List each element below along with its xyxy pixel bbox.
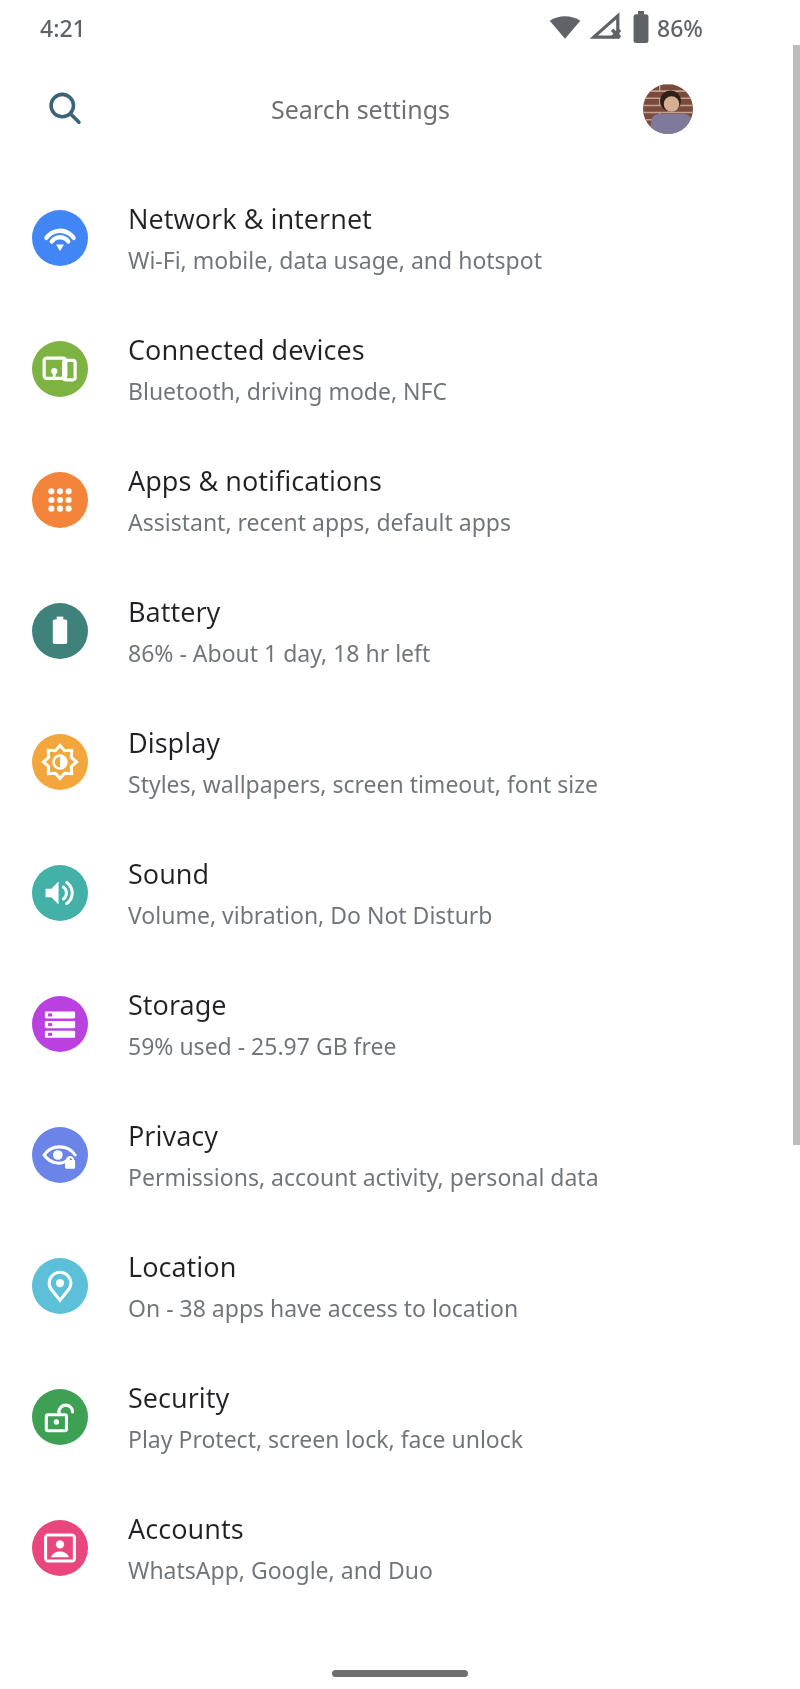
staticText: 59% used - 25.97 GB free bbox=[128, 1030, 397, 1061]
staticText: Privacy bbox=[128, 1117, 219, 1154]
other: Search bbox=[48, 92, 82, 126]
button[interactable]: Network & internet bbox=[0, 172, 800, 303]
staticText: Network & internet bbox=[128, 200, 372, 237]
button[interactable]: Display bbox=[0, 696, 800, 827]
button[interactable]: Battery bbox=[0, 565, 800, 696]
button[interactable]: Security bbox=[0, 1351, 800, 1482]
staticText: Location bbox=[128, 1248, 237, 1285]
button[interactable]: Accounts bbox=[0, 1482, 800, 1613]
staticText: 86% - About 1 day, 18 hr left bbox=[128, 637, 431, 668]
staticText: Storage bbox=[128, 986, 227, 1023]
staticText: Bluetooth, driving mode, NFC bbox=[128, 375, 448, 406]
staticText: Permissions, account activity, personal … bbox=[128, 1161, 599, 1192]
staticText: Connected devices bbox=[128, 331, 365, 368]
staticText: 4:21 bbox=[40, 12, 86, 43]
staticText: Accounts bbox=[128, 1510, 244, 1547]
staticText: Display bbox=[128, 724, 221, 761]
staticText: Battery bbox=[128, 593, 221, 630]
staticText: Assistant, recent apps, default apps bbox=[128, 506, 511, 537]
staticText: 86% bbox=[657, 12, 703, 43]
button[interactable]: Apps & notifications bbox=[0, 434, 800, 565]
staticText: Search settings bbox=[271, 92, 451, 126]
staticText: Security bbox=[128, 1379, 230, 1416]
button[interactable]: Sound bbox=[0, 827, 800, 958]
staticText: On - 38 apps have access to location bbox=[128, 1292, 519, 1323]
button[interactable]: Search bbox=[14, 68, 736, 150]
button[interactable]: Connected devices bbox=[0, 303, 800, 434]
staticText: Play Protect, screen lock, face unlock bbox=[128, 1423, 524, 1454]
staticText: Wi-Fi, mobile, data usage, and hotspot bbox=[128, 244, 542, 275]
button[interactable]: Location bbox=[0, 1220, 800, 1351]
staticText: Apps & notifications bbox=[128, 462, 382, 499]
staticText: Styles, wallpapers, screen timeout, font… bbox=[128, 768, 598, 799]
staticText: WhatsApp, Google, and Duo bbox=[128, 1554, 433, 1585]
staticText: Sound bbox=[128, 855, 210, 892]
staticText: Volume, vibration, Do Not Disturb bbox=[128, 899, 493, 930]
button[interactable]: Account bbox=[643, 84, 693, 134]
button[interactable]: Storage bbox=[0, 958, 800, 1089]
button[interactable]: Privacy bbox=[0, 1089, 800, 1220]
